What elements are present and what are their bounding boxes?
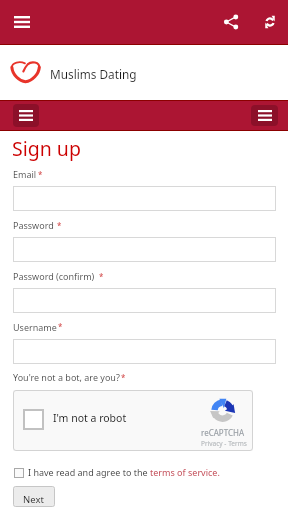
staticText: You're not a bot, are you?: [13, 371, 120, 383]
staticText: Sign up: [12, 135, 81, 162]
staticText: Username: [13, 321, 57, 333]
staticText: I'm not a robot: [53, 411, 127, 425]
staticText: I have read and agree to the: [28, 466, 150, 478]
staticText: *: [57, 220, 62, 231]
button[interactable]: Refresh: [257, 9, 283, 35]
other: Muslims Dating logo: [11, 61, 40, 82]
button[interactable]: More options: [251, 105, 278, 126]
staticText: reCAPTCHA: [201, 427, 245, 438]
button[interactable]: I have read and agree to the: [14, 466, 220, 478]
staticText: Password: [13, 219, 54, 231]
button[interactable]: Next: [13, 486, 55, 507]
staticText: *: [121, 372, 126, 383]
button[interactable]: Share: [218, 9, 244, 35]
button[interactable]: I'm not a robot: [13, 390, 253, 451]
staticText: Muslims Dating: [50, 66, 137, 82]
staticText: Next: [23, 493, 44, 506]
staticText: Privacy - Terms: [201, 439, 247, 448]
button[interactable]: [13, 186, 276, 211]
staticText: *: [99, 271, 104, 282]
staticText: terms of service.: [150, 466, 220, 478]
button[interactable]: [13, 288, 276, 313]
button[interactable]: [13, 237, 276, 262]
button[interactable]: Menu: [13, 104, 39, 127]
staticText: *: [38, 169, 43, 180]
button[interactable]: Open navigation menu: [9, 9, 35, 35]
staticText: Email: [13, 168, 37, 180]
staticText: *: [58, 321, 63, 332]
staticText: Password (confirm): [13, 270, 95, 282]
button[interactable]: [13, 339, 276, 364]
